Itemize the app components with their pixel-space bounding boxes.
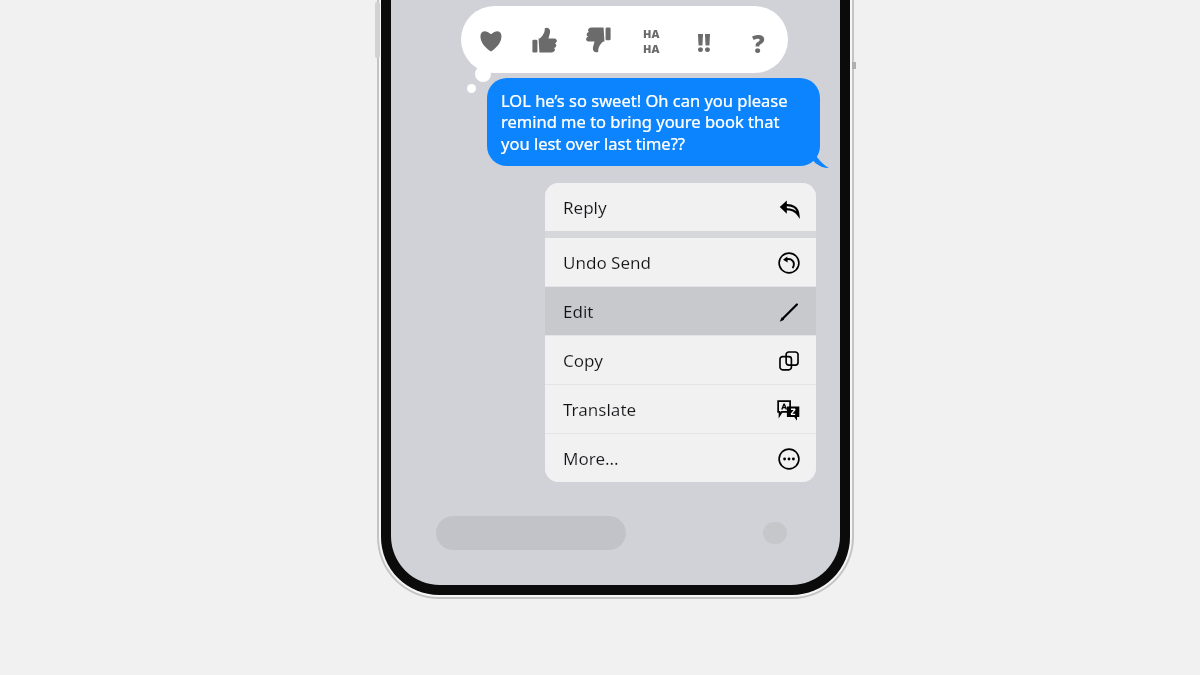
staticText: Edit [563,300,594,323]
staticText: Copy [563,349,603,372]
button[interactable]: Copy [545,336,816,384]
button[interactable]: Thumbs up [522,17,568,63]
button[interactable]: LOL he’s so sweet! Oh can you please rem… [487,78,820,166]
staticText: Reply [563,196,607,219]
staticText: HA [643,26,660,41]
staticText: HA [643,41,660,54]
button[interactable]: Translate [545,385,816,433]
button[interactable]: Thumbs down [575,17,621,63]
button[interactable]: Edit [545,287,816,335]
staticText: More... [563,447,619,470]
staticText: !! [697,26,711,54]
button[interactable]: Reply [545,183,816,231]
button[interactable]: More... [545,434,816,482]
staticText: Undo Send [563,251,651,274]
button[interactable]: Question [735,17,781,63]
staticText: Translate [563,398,637,421]
button[interactable]: Haha [628,17,674,63]
button[interactable]: Love [468,17,514,63]
button[interactable]: Undo Send [545,238,816,286]
button[interactable]: Exclamation [681,17,727,63]
staticText: ? [752,26,765,54]
staticText: LOL he’s so sweet! Oh can you please rem… [501,89,806,155]
